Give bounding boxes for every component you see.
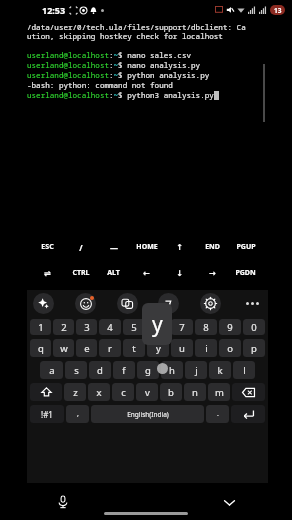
button[interactable]: More bbox=[242, 293, 262, 313]
staticText: a bbox=[49, 364, 55, 377]
button[interactable]: j bbox=[185, 361, 207, 379]
button[interactable]: t bbox=[123, 339, 145, 357]
staticText: 8 bbox=[203, 321, 209, 334]
staticText: 12:53 bbox=[42, 4, 66, 16]
staticText: PGUP bbox=[236, 242, 256, 252]
button[interactable]: PGUP bbox=[229, 240, 262, 254]
button[interactable]: Assistant bbox=[33, 293, 54, 314]
button[interactable]: b bbox=[160, 383, 182, 401]
button[interactable]: 0 bbox=[243, 319, 265, 335]
button[interactable]: r bbox=[99, 339, 121, 357]
button[interactable]: p bbox=[243, 339, 265, 357]
staticText: END bbox=[205, 242, 220, 252]
button[interactable]: 9 bbox=[219, 319, 241, 335]
button[interactable]: y bbox=[147, 339, 169, 357]
button[interactable]: ← bbox=[130, 266, 163, 280]
button[interactable]: v bbox=[136, 383, 158, 401]
staticText: k bbox=[217, 364, 223, 377]
button[interactable]: x bbox=[88, 383, 110, 401]
staticText: o bbox=[227, 342, 233, 355]
staticText: d bbox=[97, 364, 103, 377]
button[interactable]: ↑ bbox=[163, 240, 196, 254]
button[interactable]: , bbox=[66, 405, 89, 423]
button[interactable]: → bbox=[196, 266, 229, 280]
button[interactable]: 8 bbox=[195, 319, 217, 335]
button[interactable]: k bbox=[209, 361, 231, 379]
button[interactable]: 4 bbox=[99, 319, 121, 335]
button[interactable]: !#1 bbox=[30, 405, 64, 423]
button[interactable]: h bbox=[161, 361, 183, 379]
staticText: e bbox=[84, 342, 90, 355]
button[interactable]: Voice input bbox=[52, 491, 74, 513]
button[interactable]: d bbox=[89, 361, 111, 379]
staticText: , bbox=[77, 409, 79, 419]
staticText: CTRL bbox=[72, 268, 90, 278]
staticText: ⇌ bbox=[44, 269, 51, 278]
button[interactable]: — bbox=[97, 240, 130, 254]
button[interactable]: c bbox=[112, 383, 134, 401]
button[interactable]: m bbox=[208, 383, 230, 401]
button[interactable]: END bbox=[196, 240, 229, 254]
staticText: y bbox=[156, 342, 161, 355]
button[interactable]: f bbox=[113, 361, 135, 379]
button[interactable]: 1 bbox=[30, 319, 51, 335]
staticText: 9 bbox=[227, 321, 233, 334]
button[interactable]: Translate bbox=[117, 293, 138, 314]
button[interactable]: 5 bbox=[123, 319, 145, 335]
button[interactable]: ↓ bbox=[163, 266, 196, 280]
button[interactable]: l bbox=[233, 361, 255, 379]
staticText: ESC bbox=[41, 242, 54, 252]
staticText: . bbox=[217, 409, 219, 419]
button[interactable]: ALT bbox=[97, 266, 130, 280]
staticText: PGDN bbox=[235, 268, 256, 278]
staticText: u bbox=[179, 342, 185, 355]
button[interactable]: 6 bbox=[147, 319, 169, 335]
button[interactable]: s bbox=[65, 361, 87, 379]
button[interactable]: a bbox=[40, 361, 63, 379]
staticText: y bbox=[152, 310, 163, 339]
staticText: j bbox=[195, 364, 198, 377]
button[interactable]: ⇌ bbox=[30, 266, 64, 280]
staticText: English(India) bbox=[127, 410, 169, 419]
button[interactable]: Backspace bbox=[232, 383, 265, 401]
button[interactable]: Clipboard bbox=[158, 293, 179, 314]
button[interactable]: o bbox=[219, 339, 241, 357]
button[interactable]: ESC bbox=[30, 240, 64, 254]
button[interactable]: n bbox=[184, 383, 206, 401]
button[interactable]: z bbox=[64, 383, 86, 401]
button[interactable]: w bbox=[53, 339, 74, 357]
button[interactable]: i bbox=[195, 339, 217, 357]
button[interactable]: 2 bbox=[53, 319, 74, 335]
button[interactable]: 7 bbox=[171, 319, 193, 335]
staticText: /data/user/0/tech.ula/files/support/dbcl… bbox=[27, 22, 246, 42]
staticText: !#1 bbox=[41, 409, 53, 420]
button[interactable]: PGDN bbox=[229, 266, 262, 280]
staticText: userland@localhost:~$ nano analysis.py bbox=[27, 60, 201, 70]
staticText: ← bbox=[143, 269, 150, 278]
button[interactable]: CTRL bbox=[64, 266, 97, 280]
staticText: t bbox=[132, 342, 136, 355]
staticText: b bbox=[168, 386, 174, 399]
button[interactable]: Shift bbox=[30, 383, 62, 401]
staticText: / bbox=[79, 242, 83, 253]
button[interactable]: / bbox=[64, 240, 97, 254]
staticText: ALT bbox=[107, 268, 120, 278]
button[interactable]: English(India) bbox=[91, 405, 204, 423]
button[interactable]: g bbox=[137, 361, 159, 379]
staticText: v bbox=[145, 386, 150, 399]
staticText: i bbox=[205, 342, 208, 355]
button[interactable]: u bbox=[171, 339, 193, 357]
button[interactable]: e bbox=[76, 339, 97, 357]
button[interactable]: 3 bbox=[76, 319, 97, 335]
button[interactable]: HOME bbox=[130, 240, 163, 254]
button[interactable]: . bbox=[206, 405, 229, 423]
staticText: 0 bbox=[251, 321, 257, 334]
button[interactable]: Emoji bbox=[75, 293, 96, 314]
button[interactable]: Enter bbox=[231, 405, 265, 423]
staticText: 6 bbox=[155, 321, 161, 334]
staticText: -bash: python: command not found bbox=[27, 80, 173, 90]
staticText: g bbox=[145, 364, 151, 377]
button[interactable]: q bbox=[30, 339, 51, 357]
button[interactable]: Hide keyboard bbox=[218, 491, 240, 513]
button[interactable]: Settings bbox=[200, 293, 221, 314]
